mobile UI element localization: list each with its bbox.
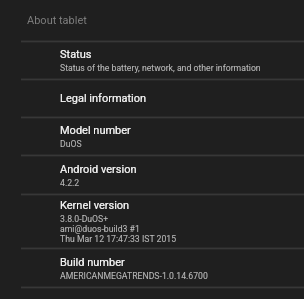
staticText: 4.2.2 <box>60 178 80 188</box>
staticText: Legal information <box>60 92 147 105</box>
staticText: DuOS <box>60 139 82 149</box>
button[interactable]: Model number <box>0 118 304 155</box>
staticText: AMERICANMEGATRENDS-1.0.14.6700 <box>60 271 208 281</box>
button[interactable]: Status <box>0 42 304 79</box>
button[interactable]: Build number <box>0 249 304 287</box>
staticText: Build number <box>60 256 125 269</box>
staticText: Model number <box>60 124 131 137</box>
staticText: Status <box>60 48 92 61</box>
staticText: Android version <box>60 163 137 176</box>
staticText: About tablet <box>27 14 87 27</box>
staticText: Status of the battery, network, and othe… <box>60 63 261 73</box>
button[interactable]: Android version <box>0 156 304 194</box>
staticText: Kernel version <box>60 199 130 212</box>
button[interactable]: Kernel version <box>0 195 304 248</box>
staticText: 3.8.0-DuOS+ ami@duos-build3 #1 Thu Mar 1… <box>60 214 177 244</box>
button[interactable]: Legal information <box>0 80 304 117</box>
